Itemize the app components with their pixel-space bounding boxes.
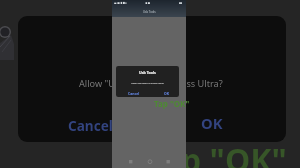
staticText: Tap "OK" bbox=[146, 138, 287, 168]
button[interactable]: Usb Tools bbox=[112, 0, 186, 17]
staticText: Usb Tools bbox=[143, 10, 156, 14]
staticText: OK bbox=[201, 113, 223, 133]
button[interactable]: OK bbox=[164, 91, 169, 96]
staticText: Allow "Usb Tools" to access Ultra? bbox=[131, 82, 164, 85]
button[interactable]: Recents bbox=[126, 157, 136, 167]
button[interactable]: Back bbox=[163, 157, 173, 167]
staticText: OK bbox=[164, 91, 169, 96]
staticText: Usb Tools bbox=[139, 70, 156, 75]
staticText: Cancel bbox=[128, 91, 140, 96]
button[interactable]: Cancel bbox=[128, 91, 140, 96]
staticText: Allow "Usb Tools" to access Ultra? bbox=[79, 77, 223, 90]
staticText: Tap "OK" bbox=[154, 98, 190, 109]
button[interactable]: Home bbox=[145, 157, 155, 167]
staticText: Cancel bbox=[68, 116, 113, 135]
